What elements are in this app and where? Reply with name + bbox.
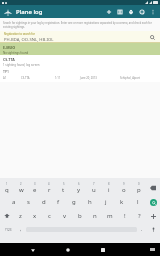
button[interactable]: Recent apps [97,244,108,255]
button[interactable]: . [137,223,147,236]
button[interactable]: Back [27,244,38,255]
button[interactable]: h [82,195,98,209]
staticText: g [72,198,76,206]
staticText: PH-BDA, OO-SNL, HB-IOL [4,37,54,43]
staticText: CS-TTA [21,76,55,80]
button[interactable]: g [66,195,82,209]
button[interactable]: 1 [0,181,14,195]
staticText: 3 [34,182,36,186]
staticText: t [62,186,65,194]
button[interactable]: E-MUO [0,43,160,55]
button[interactable]: ?123 [0,223,16,236]
button[interactable]: v [57,209,72,223]
staticText: u [92,186,96,194]
button[interactable]: s [21,195,36,209]
staticText: A1 [3,76,21,80]
button[interactable]: x [27,209,42,223]
button[interactable]: Switch keyboard [147,244,158,255]
staticText: b [78,212,82,220]
button[interactable]: Backspace [146,181,160,195]
button[interactable]: 8 [101,181,116,195]
staticText: z [19,212,22,220]
button[interactable]: More options [147,6,158,17]
button[interactable]: f [51,195,66,209]
staticText: 6 [78,182,80,186]
button[interactable]: Search [146,195,160,209]
staticText: d [42,198,46,206]
button[interactable]: k [114,195,130,209]
button[interactable]: 6 [71,181,86,195]
staticText: , [20,226,22,233]
button[interactable]: 2 [14,181,28,195]
staticText: j [105,198,107,206]
staticText: 4 [48,182,50,186]
button[interactable]: Add [103,6,114,17]
button[interactable]: b [72,209,87,223]
button[interactable]: j [98,195,114,209]
button[interactable]: Print [125,6,136,17]
button[interactable]: Voice input [147,223,160,236]
button[interactable]: a [6,195,21,209]
staticText: o [122,186,126,194]
staticText: June 20, 2013 [80,76,120,80]
staticText: 0 [138,182,140,186]
button[interactable]: 4 [42,181,56,195]
button[interactable]: Settings [136,6,147,17]
button[interactable]: 0 [131,181,146,195]
button[interactable]: Registration to search for [0,31,160,43]
staticText: ? [138,212,141,220]
button[interactable]: App icon [3,7,12,16]
button[interactable]: ? [132,209,147,223]
button[interactable]: d [36,195,51,209]
staticText: 5 [63,182,65,186]
staticText: y [77,186,81,194]
button[interactable]: 3 [28,181,42,195]
button[interactable]: Search [148,33,157,42]
button[interactable]: ! [117,209,132,223]
button[interactable]: Table view [114,6,125,17]
staticText: 9 [123,182,125,186]
button[interactable]: l [130,195,146,209]
staticText: ?123 [5,228,12,232]
staticText: k [120,198,124,206]
staticText: ! [124,212,126,220]
staticText: v [63,212,67,220]
staticText: Search for sightings in your log by regi… [3,21,152,25]
button[interactable]: z [13,209,27,223]
button[interactable]: n [87,209,102,223]
staticText: i [108,186,110,194]
staticText: r [48,186,51,194]
button[interactable]: 7 [86,181,101,195]
staticText: 1 sighting found, log screen [3,63,40,67]
button[interactable]: Emoji [147,209,160,223]
button[interactable]: m [102,209,117,223]
button[interactable]: Shift [0,209,13,223]
staticText: Registration to search for [4,32,35,36]
staticText: existing sightings. [3,25,26,29]
staticText: 1 [6,182,8,186]
staticText: 8 [108,182,110,186]
staticText: w [19,186,24,194]
staticText: a [12,198,16,206]
staticText: . [141,226,143,233]
staticText: h [88,198,92,206]
staticText: 7 [93,182,95,186]
staticText: No sightings found [3,51,29,55]
button[interactable]: Home [62,244,73,255]
staticText: 2 [20,182,22,186]
button[interactable]: 5 [56,181,71,195]
staticText: q [5,186,9,194]
button[interactable]: 9 [116,181,131,195]
staticText: Schiphol, Aiport [120,76,157,80]
button[interactable]: TP1 [0,67,160,82]
button[interactable]: c [42,209,57,223]
staticText: s [27,198,30,206]
button[interactable]: CS-TTA [0,55,160,67]
staticText: TP1 [3,69,9,74]
staticText: p [137,186,141,194]
button[interactable]: , [16,223,26,236]
staticText: E-MUO [3,45,16,50]
staticText: x [33,212,37,220]
staticText: m [107,212,113,220]
